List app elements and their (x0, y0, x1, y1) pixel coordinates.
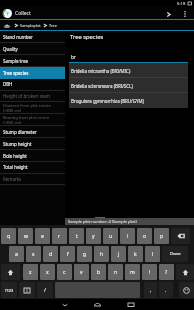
button[interactable]: r (52, 228, 67, 244)
button[interactable]: w (18, 228, 33, 244)
staticText: br (71, 54, 76, 60)
staticText: Stump height (3, 141, 32, 147)
button[interactable]: Sample tree (0, 55, 65, 67)
button[interactable]: Home (81, 299, 114, 310)
staticText: y (92, 233, 95, 240)
staticText: Tree species (3, 70, 29, 76)
button[interactable]: ? (159, 264, 174, 280)
button[interactable]: Stump diameter (0, 126, 65, 138)
button[interactable]: Next (163, 9, 173, 19)
button[interactable]: k (128, 246, 143, 262)
staticText: n (114, 269, 118, 276)
button[interactable]: Shift (1, 264, 20, 280)
staticText: q (7, 233, 11, 240)
button[interactable]: y (86, 228, 101, 244)
staticText: Stump diameter (3, 129, 37, 135)
button[interactable]: p (154, 228, 169, 244)
button[interactable]: Bruguiera gymnorrhiza (BRU/GYM) (69, 93, 188, 108)
button[interactable]: More options (180, 9, 190, 19)
staticText: g (83, 251, 87, 258)
button[interactable]: t (69, 228, 84, 244)
staticText: (>800 cm) (3, 108, 22, 113)
button[interactable]: u (103, 228, 118, 244)
button[interactable]: i (120, 228, 135, 244)
staticText: ! (149, 269, 151, 276)
staticText: Sample plot number: 4 (Sample plot) (68, 219, 137, 224)
button[interactable]: Tree species (0, 67, 65, 79)
button[interactable]: Quality (0, 43, 65, 55)
staticText: l (152, 251, 154, 258)
staticText: r (58, 233, 61, 240)
staticText: a (15, 251, 18, 258)
button[interactable]: DBH (0, 78, 65, 90)
button[interactable]: ?123 (1, 282, 17, 298)
button[interactable]: Total height (0, 161, 65, 173)
button[interactable]: f (60, 246, 75, 262)
staticText: , (150, 287, 152, 294)
button[interactable]: Emoji (179, 282, 194, 298)
staticText: Bridelia scleroneura (BRI/SCL) (71, 83, 133, 89)
button[interactable]: Bole height (0, 150, 65, 162)
button[interactable]: Remarks (0, 173, 65, 185)
staticText: k (134, 251, 137, 258)
button[interactable]: v (74, 264, 89, 280)
button[interactable]: j (111, 246, 126, 262)
button[interactable]: m (125, 264, 140, 280)
button[interactable]: Sampleplot (20, 23, 41, 28)
button[interactable]: Back (48, 299, 81, 310)
button[interactable]: a (9, 246, 24, 262)
button[interactable]: b (91, 264, 106, 280)
staticText: f (67, 251, 69, 258)
button[interactable]: e (35, 228, 50, 244)
button[interactable]: Shift (176, 264, 194, 280)
button[interactable]: Done (162, 246, 188, 262)
button[interactable]: Stump height (0, 138, 65, 150)
staticText: Bearing from plot centre (3, 115, 50, 120)
staticText: Bridelia micrantha (BRI/MIC) (71, 68, 131, 74)
button[interactable]: / (37, 282, 53, 298)
staticText: Sampleplot (20, 23, 41, 28)
staticText: ? (165, 269, 168, 276)
button[interactable]: l (145, 246, 160, 262)
button[interactable]: o (137, 228, 152, 244)
button[interactable]: Stand number (0, 31, 65, 43)
button[interactable]: x (40, 264, 55, 280)
button[interactable]: Switch keyboard (19, 282, 35, 298)
button[interactable]: s (26, 246, 41, 262)
staticText: Total height (3, 164, 28, 170)
button[interactable]: h (94, 246, 109, 262)
button[interactable]: Distance from plot centre (0, 102, 65, 114)
button[interactable]: Bridelia micrantha (BRI/MIC) (69, 63, 188, 78)
staticText: ?123 (5, 288, 14, 293)
staticText: Stand number (3, 34, 33, 40)
button[interactable]: Recents (114, 299, 147, 310)
button[interactable]: z (23, 264, 38, 280)
button[interactable]: n (108, 264, 123, 280)
button[interactable]: . (159, 282, 173, 298)
staticText: e (41, 233, 44, 240)
button[interactable]: c (57, 264, 72, 280)
button[interactable]: , (144, 282, 157, 298)
staticText: o (143, 233, 147, 240)
staticText: . (165, 287, 167, 294)
button[interactable]: Home (3, 23, 11, 29)
staticText: Tree (49, 23, 57, 28)
staticText: 5:18 (177, 1, 186, 7)
button[interactable]: Height of broken stem (0, 90, 65, 102)
staticText: Distance from plot centre (3, 103, 51, 108)
button[interactable]: Bearing from plot centre (0, 114, 65, 126)
button[interactable]: q (1, 228, 16, 244)
button[interactable]: Backspace (171, 228, 190, 244)
staticText: Remarks (3, 176, 22, 182)
staticText: DBH (3, 81, 13, 87)
button[interactable]: g (77, 246, 92, 262)
staticText: t (76, 233, 78, 240)
button[interactable]: d (43, 246, 58, 262)
staticText: / (44, 287, 46, 294)
button[interactable]: Tree (49, 23, 57, 28)
button[interactable]: Bridelia scleroneura (BRI/SCL) (69, 78, 188, 93)
staticText: h (100, 251, 104, 258)
button[interactable]: ! (142, 264, 157, 280)
staticText: i (127, 233, 129, 240)
